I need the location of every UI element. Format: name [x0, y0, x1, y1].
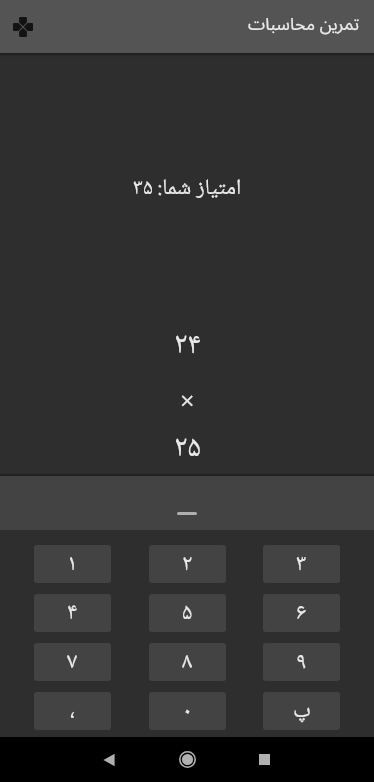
staticText: امتیاز شما: ۳۵ — [133, 170, 242, 207]
button[interactable]: پ — [263, 692, 340, 730]
staticText: ۵ — [182, 594, 193, 632]
staticText: ۴ — [67, 594, 78, 632]
button[interactable]: ، — [34, 692, 111, 730]
button[interactable]: ۳ — [263, 545, 340, 583]
staticText: ۱ — [67, 545, 78, 583]
staticText: ۶ — [296, 594, 307, 632]
button[interactable]: ۴ — [34, 594, 111, 632]
staticText: ۲ — [182, 545, 193, 583]
button[interactable]: ۸ — [149, 643, 226, 681]
staticText: ۷ — [67, 643, 78, 681]
staticText: ۳ — [296, 545, 307, 583]
staticText: تمرین محاسبات — [248, 6, 360, 43]
staticText: ۰ — [182, 692, 193, 730]
button[interactable]: Menu — [4, 8, 42, 46]
button[interactable]: ۵ — [149, 594, 226, 632]
button[interactable]: Keyboard handle — [177, 512, 197, 515]
button[interactable]: Back — [70, 737, 148, 782]
staticText: ، — [70, 692, 75, 730]
button[interactable]: ۷ — [34, 643, 111, 681]
staticText: ۹ — [296, 643, 307, 681]
staticText: ۸ — [182, 643, 193, 681]
button[interactable]: ۱ — [34, 545, 111, 583]
button[interactable]: Home — [148, 737, 226, 782]
button[interactable]: ۶ — [263, 594, 340, 632]
staticText: ۲۵ — [174, 424, 201, 475]
staticText: پ — [293, 692, 311, 730]
staticText: ۲۴ — [174, 321, 201, 372]
button[interactable]: ۲ — [149, 545, 226, 583]
button[interactable]: Recent apps — [225, 737, 303, 782]
button[interactable]: ۹ — [263, 643, 340, 681]
staticText: × — [180, 382, 195, 426]
button[interactable]: ۰ — [149, 692, 226, 730]
